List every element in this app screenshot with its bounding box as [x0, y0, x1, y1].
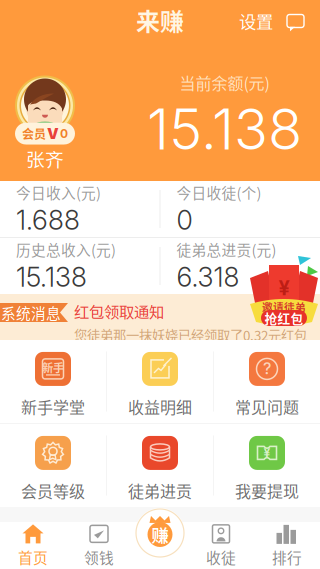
staticText: 红包领取通知	[74, 300, 164, 322]
button[interactable]: 领钱	[66, 522, 132, 569]
staticText: 排行	[272, 546, 302, 568]
staticText: 会员	[22, 125, 46, 142]
button[interactable]: ¥	[214, 424, 320, 507]
staticText: 1.688	[16, 204, 80, 236]
staticText: 今日收徒(个)	[176, 182, 261, 203]
staticText: 邀请徒弟	[262, 299, 306, 314]
staticText: 6.318	[176, 261, 239, 293]
staticText: ¥	[278, 276, 289, 300]
staticText: ¥	[263, 446, 270, 460]
staticText: 0	[60, 126, 68, 141]
staticText: 今日收入(元)	[16, 182, 101, 203]
staticText: 常见问题	[235, 395, 299, 418]
staticText: ?	[263, 359, 271, 378]
button[interactable]: 新手	[0, 340, 106, 423]
staticText: 我要提现	[235, 479, 299, 502]
button[interactable]: 赚	[135, 508, 185, 558]
staticText: V	[47, 125, 59, 142]
staticText: 新手学堂	[21, 395, 85, 418]
staticText: 张齐	[26, 145, 64, 172]
staticText: 0	[176, 204, 192, 236]
staticText: 15.138	[16, 261, 87, 293]
staticText: 新手	[42, 359, 64, 376]
button[interactable]: 徒弟进贡	[107, 424, 213, 507]
staticText: 赚	[151, 522, 168, 547]
staticText: 当前余额(元)	[179, 71, 269, 94]
staticText: 收益明细	[128, 395, 192, 418]
staticText: 抢红包	[264, 309, 303, 327]
button[interactable]: 设置	[233, 0, 279, 43]
staticText: 设置	[239, 8, 273, 34]
staticText: 15.138	[147, 95, 302, 163]
button[interactable]: 收益明细	[107, 340, 213, 423]
button[interactable]: 收徒	[188, 522, 254, 569]
staticText: 收徒	[206, 546, 236, 568]
button[interactable]: 首页	[0, 522, 66, 569]
button[interactable]: ?	[214, 340, 320, 423]
staticText: 您徒弟那一抹妖娆已经领取了0.32元红包	[74, 325, 307, 344]
staticText: 历史总收入(元)	[16, 239, 116, 260]
button[interactable]: 会员等级	[0, 424, 106, 507]
staticText: 领钱	[84, 546, 114, 568]
staticText: 徒弟总进贡(元)	[176, 239, 276, 260]
staticText: 来赚	[136, 3, 184, 37]
staticText: 系统消息	[1, 302, 61, 323]
button[interactable]: 消息	[279, 5, 312, 37]
staticText: 首页	[18, 546, 48, 568]
staticText: 徒弟进贡	[128, 479, 192, 502]
button[interactable]: 排行	[254, 522, 320, 569]
staticText: 会员等级	[21, 479, 85, 502]
